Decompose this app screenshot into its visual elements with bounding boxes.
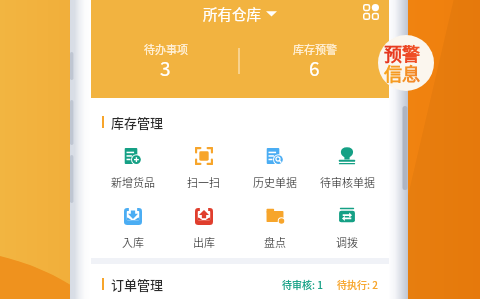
staticText: 订单管理 xyxy=(111,275,164,293)
staticText: 待审核单据 xyxy=(320,174,375,190)
button[interactable]: 所有仓库 xyxy=(197,1,283,26)
staticText: 库存预警 xyxy=(293,41,337,57)
button[interactable]: 出库 xyxy=(168,207,239,250)
button[interactable]: 扫一扫 xyxy=(168,147,239,190)
button[interactable]: 待审核单据 xyxy=(311,147,383,190)
staticText: 新增货品 xyxy=(111,174,155,190)
staticText: 出库 xyxy=(193,234,215,250)
button[interactable]: 新增货品 xyxy=(97,147,168,190)
staticText: 信息 xyxy=(384,60,420,86)
button[interactable]: 调拨 xyxy=(311,207,383,250)
staticText: 历史单据 xyxy=(253,174,297,190)
staticText: 预警 xyxy=(384,40,420,66)
staticText: 扫一扫 xyxy=(187,174,220,190)
button[interactable]: 入库 xyxy=(97,207,168,250)
staticText: 库存管理 xyxy=(111,113,164,131)
button[interactable]: 预警信息 xyxy=(378,35,434,91)
button[interactable]: 盘点 xyxy=(239,207,311,250)
button[interactable]: 待办事项 xyxy=(91,41,240,85)
staticText: 待执行: 2 xyxy=(337,277,378,291)
staticText: 待办事项 xyxy=(144,41,188,57)
staticText: 3 xyxy=(160,54,171,82)
staticText: 盘点 xyxy=(264,234,286,250)
staticText: 待审核: 1 xyxy=(282,277,323,291)
button[interactable]: 库存预警 xyxy=(240,41,389,85)
staticText: 所有仓库 xyxy=(203,3,261,24)
button[interactable]: 历史单据 xyxy=(239,147,311,190)
staticText: 6 xyxy=(309,54,320,82)
staticText: 调拨 xyxy=(336,234,358,250)
staticText: 入库 xyxy=(122,234,144,250)
button[interactable]: Apps menu xyxy=(363,4,379,20)
